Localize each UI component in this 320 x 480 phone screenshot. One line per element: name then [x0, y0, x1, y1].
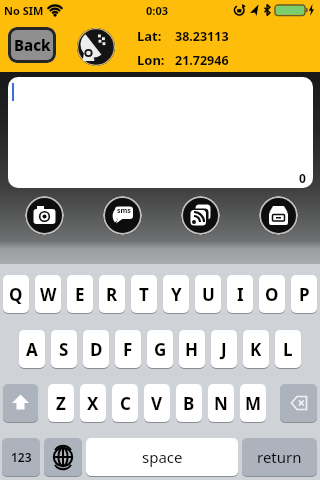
staticText: R — [106, 283, 118, 306]
button[interactable]: N — [208, 384, 234, 422]
staticText: F — [123, 338, 133, 361]
staticText: 0 — [299, 170, 306, 186]
staticText: Q — [9, 283, 23, 306]
button[interactable] — [25, 196, 64, 235]
button[interactable]: L — [275, 330, 301, 368]
button[interactable]: S — [51, 330, 77, 368]
staticText: Back — [14, 35, 51, 55]
staticText: Z — [56, 392, 66, 415]
staticText: W — [40, 283, 57, 306]
button[interactable]: Q — [3, 275, 29, 313]
staticText: Y — [171, 283, 182, 306]
button[interactable] — [181, 196, 220, 235]
button[interactable]: U — [195, 275, 221, 313]
button[interactable]: A — [19, 330, 45, 368]
staticText: X — [87, 392, 99, 415]
button[interactable]: Back — [8, 27, 56, 63]
button[interactable]: X — [80, 384, 106, 422]
staticText: No SIM — [4, 3, 44, 18]
button[interactable]: R — [99, 275, 125, 313]
button[interactable]: B — [176, 384, 202, 422]
staticText: Lon: — [137, 51, 165, 69]
staticText: D — [90, 338, 103, 361]
button[interactable] — [103, 196, 142, 235]
staticText: 123 — [11, 449, 32, 465]
button[interactable] — [77, 28, 115, 66]
staticText: V — [151, 392, 163, 415]
staticText: T — [139, 283, 149, 306]
staticText: B — [183, 392, 195, 415]
staticText: P — [299, 283, 310, 306]
staticText: U — [202, 283, 215, 306]
button[interactable]: Z — [48, 384, 74, 422]
button[interactable]: return — [242, 438, 317, 476]
button[interactable]: Y — [163, 275, 189, 313]
staticText: 0:03 — [146, 3, 168, 18]
button[interactable] — [3, 384, 38, 422]
staticText: return — [257, 447, 302, 467]
staticText: C — [120, 392, 131, 415]
button[interactable] — [280, 384, 317, 422]
button[interactable]: E — [67, 275, 93, 313]
staticText: G — [154, 338, 167, 361]
button[interactable]: 123 — [2, 438, 40, 476]
staticText: M — [245, 392, 262, 415]
staticText: N — [214, 392, 228, 415]
button[interactable]: C — [112, 384, 138, 422]
button[interactable]: 0 — [8, 77, 313, 188]
button[interactable]: K — [243, 330, 269, 368]
button[interactable]: I — [227, 275, 253, 313]
staticText: A — [26, 338, 38, 361]
button[interactable]: G — [147, 330, 173, 368]
button[interactable]: T — [131, 275, 157, 313]
button[interactable]: V — [144, 384, 170, 422]
staticText: I — [237, 283, 244, 306]
button[interactable]: J — [211, 330, 237, 368]
staticText: J — [221, 338, 227, 361]
staticText: Lat: — [137, 27, 162, 45]
button[interactable]: P — [291, 275, 317, 313]
button[interactable]: W — [35, 275, 61, 313]
staticText: H — [185, 338, 199, 361]
button[interactable]: D — [83, 330, 109, 368]
staticText: sms — [117, 206, 131, 216]
staticText: 21.72946 — [175, 52, 229, 69]
button[interactable]: space — [86, 438, 238, 476]
staticText: 38.23113 — [175, 28, 229, 45]
button[interactable] — [259, 196, 298, 235]
staticText: S — [59, 338, 69, 361]
button[interactable]: F — [115, 330, 141, 368]
button[interactable]: O — [259, 275, 285, 313]
staticText: space — [142, 447, 183, 467]
staticText: L — [283, 338, 293, 361]
staticText: E — [75, 283, 85, 306]
button[interactable]: M — [240, 384, 266, 422]
button[interactable]: H — [179, 330, 205, 368]
staticText: O — [265, 283, 279, 306]
button[interactable] — [44, 438, 82, 476]
staticText: K — [250, 338, 262, 361]
